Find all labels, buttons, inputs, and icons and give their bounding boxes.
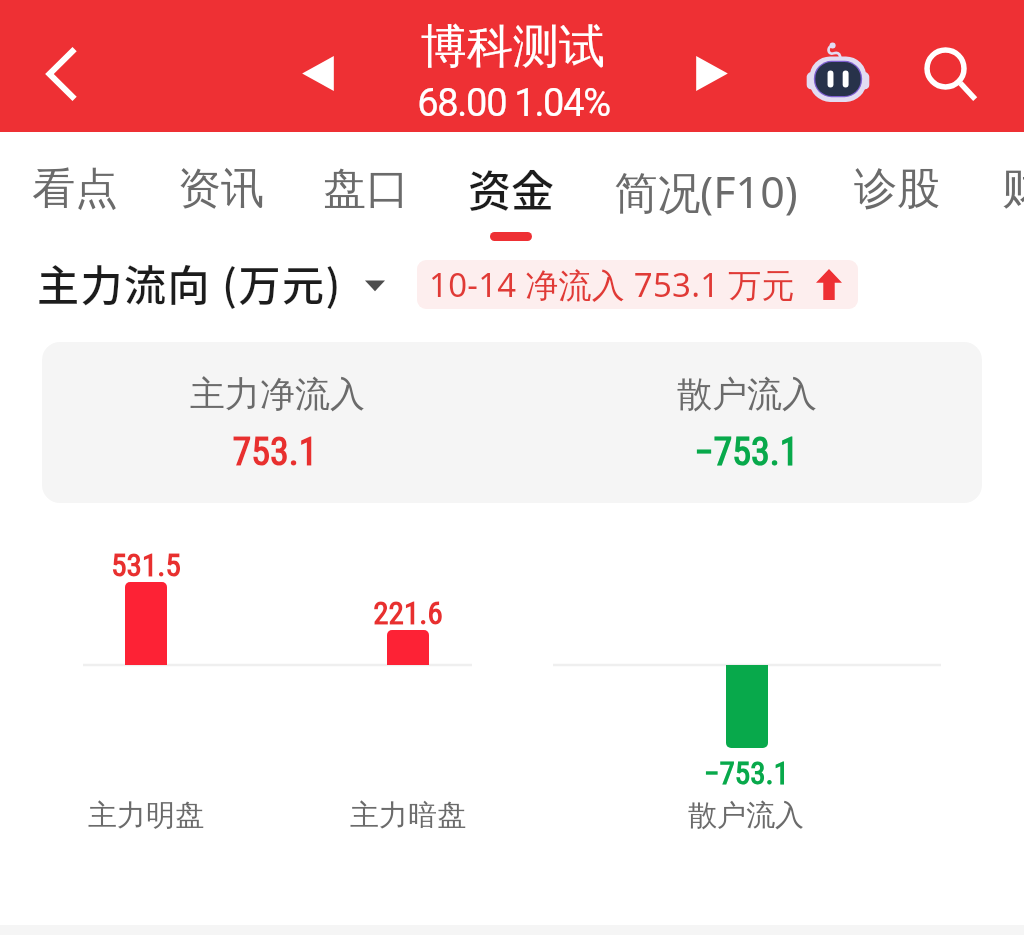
staticText: 主力净流入 (190, 372, 365, 416)
staticText: 10-14 净流入 753.1 万元 (429, 262, 795, 307)
staticText: 753.1 (232, 430, 318, 475)
button[interactable] (308, 150, 424, 232)
button[interactable]: AI assistant (800, 34, 876, 110)
button[interactable] (984, 150, 1024, 232)
staticText: 盘口 (323, 162, 409, 216)
staticText: 主力流向 (万元) (37, 252, 342, 310)
staticText: 财 (1002, 162, 1024, 216)
button[interactable]: 主力流向 (万元) (29, 252, 1024, 310)
button[interactable]: Previous stock (283, 38, 353, 108)
staticText: 诊股 (854, 162, 940, 216)
staticText: 主力明盘 (88, 797, 204, 834)
button[interactable]: 10-14 净流入 753.1 万元 (417, 260, 858, 309)
staticText: 资金 (468, 157, 554, 219)
staticText: 资讯 (178, 162, 264, 216)
staticText: 博科测试 (421, 18, 605, 76)
staticText: 散户流入 (688, 797, 804, 834)
staticText: 看点 (32, 162, 118, 216)
staticText: 简况(F10) (614, 162, 798, 221)
staticText: 68.00 1.04% (417, 81, 610, 126)
staticText: 531.5 (111, 547, 181, 583)
button[interactable]: Search (912, 36, 988, 112)
button[interactable]: Next stock (677, 38, 747, 108)
button[interactable] (449, 150, 572, 232)
staticText: 221.6 (373, 595, 443, 631)
button[interactable]: Back (22, 34, 102, 114)
button[interactable] (838, 150, 956, 232)
staticText: 散户流入 (677, 372, 817, 416)
button[interactable] (16, 150, 134, 232)
staticText: −753.1 (694, 430, 799, 475)
button[interactable] (596, 150, 816, 232)
button[interactable] (161, 150, 280, 232)
staticText: 主力暗盘 (350, 797, 466, 834)
staticText: −753.1 (704, 755, 789, 791)
